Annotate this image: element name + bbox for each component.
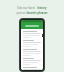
button[interactable] xyxy=(23,67,41,70)
button[interactable] xyxy=(23,58,41,65)
staticText: quiz on xyxy=(16,11,26,15)
button[interactable] xyxy=(23,49,41,56)
staticText: Take our latest xyxy=(17,6,35,10)
button[interactable] xyxy=(23,31,41,38)
button[interactable]: Phone preview xyxy=(21,20,43,70)
staticText: favorite phrases xyxy=(26,11,48,15)
button[interactable] xyxy=(25,25,39,27)
button[interactable] xyxy=(23,40,41,47)
button[interactable]: Take our latest xyxy=(0,6,64,15)
staticText: history xyxy=(37,6,47,10)
